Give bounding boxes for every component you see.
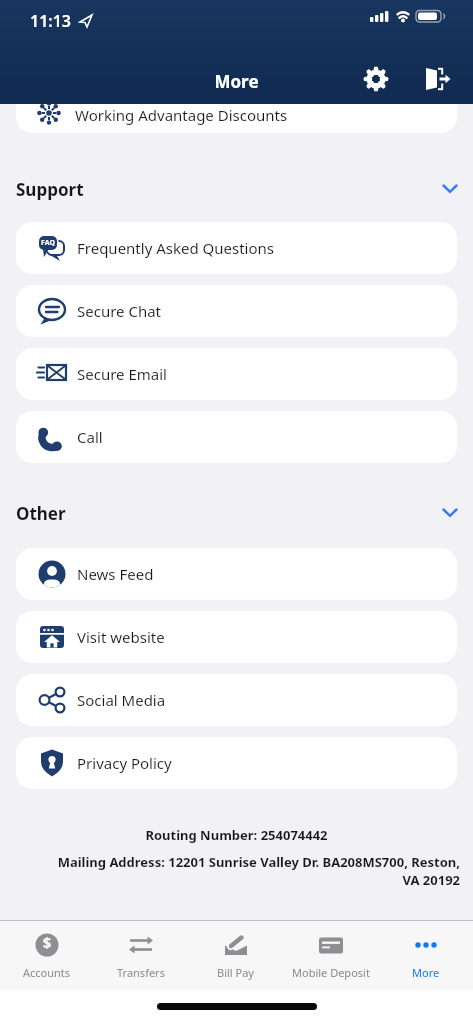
button[interactable]: Support	[16, 178, 457, 200]
button[interactable]: Transfers	[94, 933, 188, 980]
button[interactable]: News Feed	[16, 548, 457, 600]
button[interactable]: Call	[16, 411, 457, 463]
staticText: Privacy Policy	[77, 753, 172, 773]
button[interactable]	[363, 66, 389, 92]
button[interactable]: Working Advantage Discounts	[16, 104, 457, 133]
staticText: Bill Pay	[217, 965, 254, 980]
button[interactable]	[423, 66, 451, 92]
button[interactable]: More	[378, 933, 473, 980]
staticText: Routing Number: 254074442	[0, 826, 473, 844]
button[interactable]: Secure Chat	[16, 285, 457, 337]
staticText: Accounts	[23, 965, 71, 980]
staticText: $	[32, 932, 62, 952]
staticText: Mailing Address: 12201 Sunrise Valley Dr…	[13, 853, 460, 889]
button[interactable]: Mobile Deposit	[283, 933, 378, 980]
staticText: Visit website	[77, 627, 165, 647]
staticText: More	[0, 70, 473, 93]
button[interactable]: FAQ	[16, 222, 457, 274]
staticText: News Feed	[77, 564, 154, 584]
button[interactable]: Bill Pay	[188, 933, 283, 980]
staticText: Secure Chat	[77, 301, 162, 321]
button[interactable]: Social Media	[16, 674, 457, 726]
staticText: Working Advantage Discounts	[75, 105, 288, 125]
button[interactable]: $	[0, 933, 94, 980]
staticText: 11:13	[30, 10, 72, 32]
staticText: Frequently Asked Questions	[77, 238, 275, 258]
staticText: Other	[16, 502, 66, 524]
staticText: Mobile Deposit	[292, 965, 370, 980]
button[interactable]: Secure Email	[16, 348, 457, 400]
staticText: FAQ	[41, 238, 55, 248]
staticText: Social Media	[77, 690, 166, 710]
staticText: Transfers	[117, 965, 165, 980]
staticText: Call	[77, 427, 103, 447]
button[interactable]: Other	[16, 502, 457, 524]
staticText: More	[412, 965, 440, 980]
button[interactable]: Privacy Policy	[16, 737, 457, 789]
staticText: Secure Email	[77, 364, 167, 384]
button[interactable]: Visit website	[16, 611, 457, 663]
staticText: Support	[16, 178, 84, 200]
